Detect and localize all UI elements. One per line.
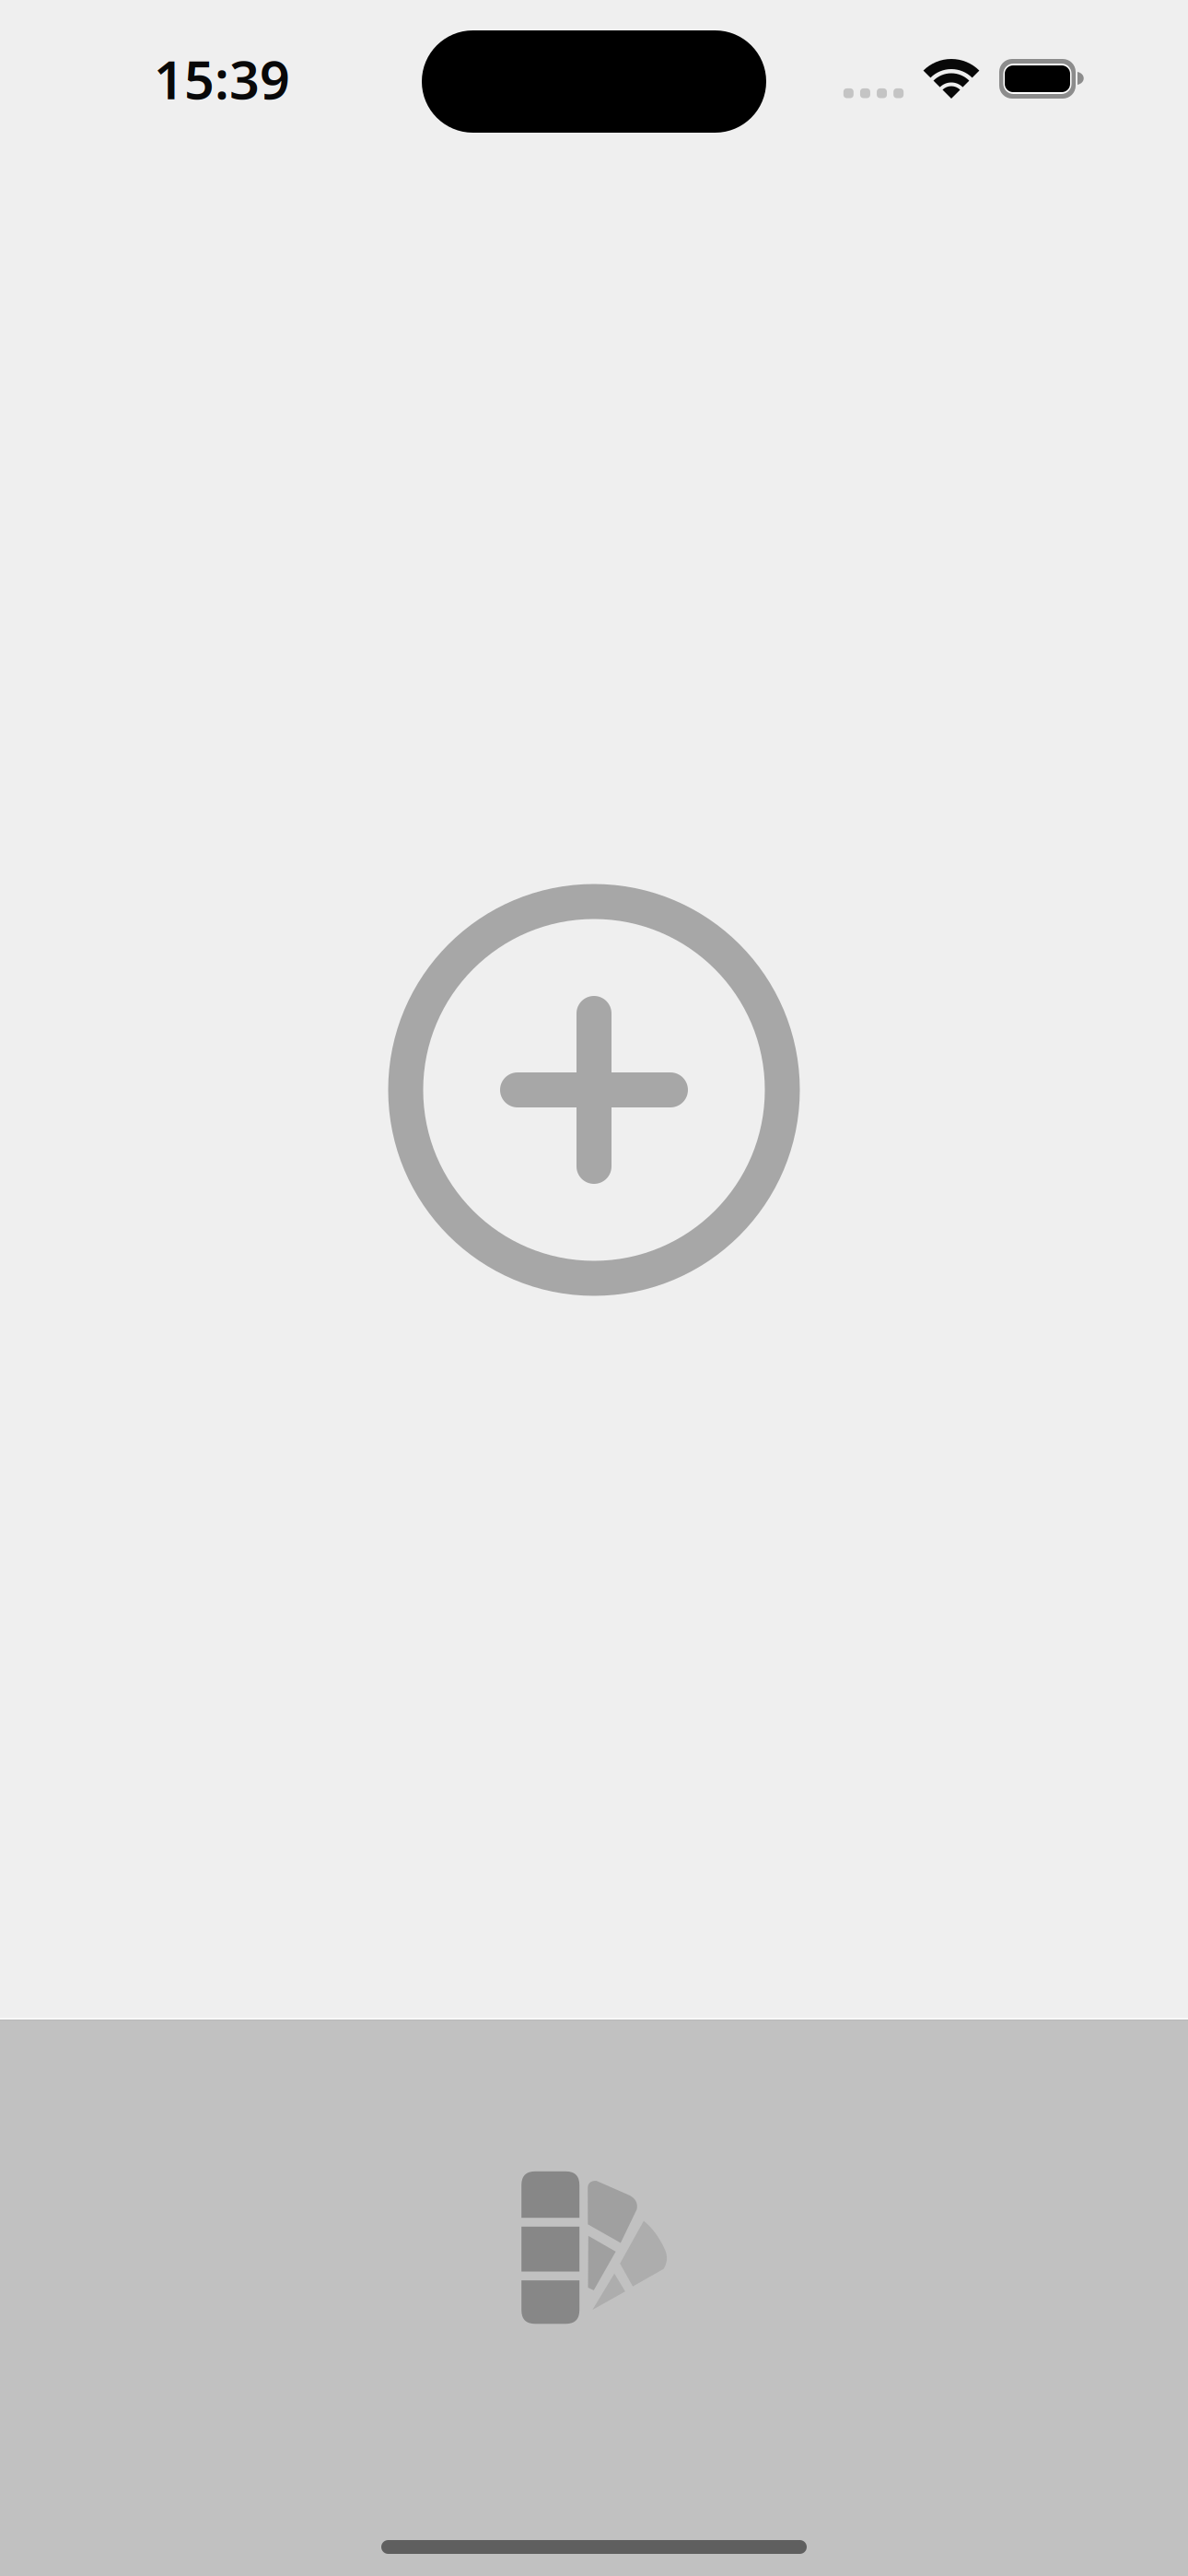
- button[interactable]: Add: [388, 884, 800, 1296]
- staticText: 15:39: [154, 44, 290, 114]
